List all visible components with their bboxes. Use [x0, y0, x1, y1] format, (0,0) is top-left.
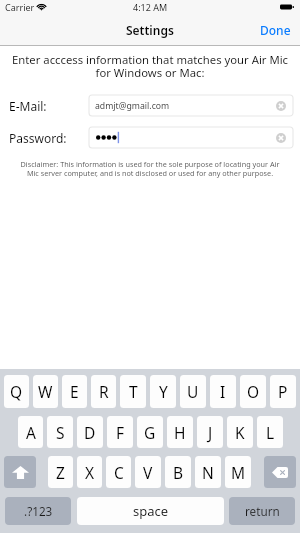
- button[interactable]: Clear text: [276, 101, 286, 111]
- staticText: E-Mail:: [9, 98, 47, 114]
- button[interactable]: A: [18, 416, 43, 448]
- staticText: Password:: [9, 130, 67, 146]
- button[interactable]: U: [180, 375, 206, 408]
- button[interactable]: space: [77, 497, 224, 525]
- staticText: R: [99, 381, 109, 402]
- button[interactable]: Q: [4, 375, 29, 408]
- button[interactable]: Clear text: [276, 133, 286, 143]
- staticText: .?123: [24, 503, 53, 519]
- button[interactable]: Z: [48, 456, 73, 488]
- staticText: Disclaimer: This information is used for…: [16, 159, 284, 178]
- staticText: Q: [10, 381, 23, 402]
- staticText: Done: [260, 22, 291, 38]
- staticText: U: [187, 381, 199, 402]
- button[interactable]: V: [135, 456, 161, 488]
- button[interactable]: O: [240, 375, 266, 408]
- staticText: J: [208, 422, 213, 443]
- staticText: return: [245, 503, 280, 519]
- button[interactable]: return: [229, 497, 295, 525]
- button[interactable]: S: [47, 416, 73, 448]
- staticText: X: [85, 462, 95, 483]
- button[interactable]: Backspace: [264, 456, 296, 488]
- staticText: L: [266, 422, 275, 443]
- staticText: T: [129, 381, 138, 402]
- staticText: Settings: [126, 22, 174, 38]
- button[interactable]: K: [227, 416, 253, 448]
- button[interactable]: B: [165, 456, 191, 488]
- staticText: K: [235, 422, 245, 443]
- button[interactable]: L: [257, 416, 283, 448]
- button[interactable]: W: [33, 375, 58, 408]
- staticText: M: [231, 462, 246, 483]
- button[interactable]: I: [210, 375, 236, 408]
- button[interactable]: J: [197, 416, 223, 448]
- staticText: 4:12 AM: [133, 1, 168, 13]
- button[interactable]: M: [225, 456, 251, 488]
- staticText: Y: [159, 381, 168, 402]
- staticText: V: [143, 462, 153, 483]
- staticText: S: [56, 422, 65, 443]
- button[interactable]: P: [270, 375, 296, 408]
- staticText: H: [174, 422, 186, 443]
- button[interactable]: Shift: [4, 456, 36, 488]
- staticText: D: [84, 422, 96, 443]
- button[interactable]: X: [77, 456, 102, 488]
- staticText: A: [26, 422, 36, 443]
- staticText: W: [38, 381, 53, 402]
- staticText: F: [116, 422, 125, 443]
- staticText: B: [173, 462, 184, 483]
- staticText: space: [133, 502, 169, 520]
- button[interactable]: N: [195, 456, 221, 488]
- staticText: E: [70, 381, 79, 402]
- button[interactable]: Clear text: [89, 127, 293, 148]
- button[interactable]: H: [167, 416, 193, 448]
- staticText: C: [114, 462, 124, 483]
- button[interactable]: D: [77, 416, 103, 448]
- button[interactable]: G: [137, 416, 163, 448]
- staticText: Z: [56, 462, 65, 483]
- staticText: O: [247, 381, 260, 402]
- button[interactable]: E: [62, 375, 87, 408]
- staticText: Enter acccess information that matches y…: [12, 52, 288, 81]
- staticText: I: [220, 381, 226, 402]
- staticText: G: [144, 422, 156, 443]
- button[interactable]: Done: [250, 14, 300, 46]
- button[interactable]: R: [91, 375, 116, 408]
- button[interactable]: T: [120, 375, 146, 408]
- button[interactable]: C: [106, 456, 131, 488]
- button[interactable]: admjt@gmail.com: [89, 95, 293, 116]
- button[interactable]: F: [107, 416, 133, 448]
- button[interactable]: Y: [150, 375, 176, 408]
- staticText: P: [278, 381, 288, 402]
- staticText: N: [202, 462, 214, 483]
- button[interactable]: .?123: [5, 497, 71, 525]
- staticText: admjt@gmail.com: [95, 100, 170, 112]
- staticText: Carrier: [5, 1, 35, 13]
